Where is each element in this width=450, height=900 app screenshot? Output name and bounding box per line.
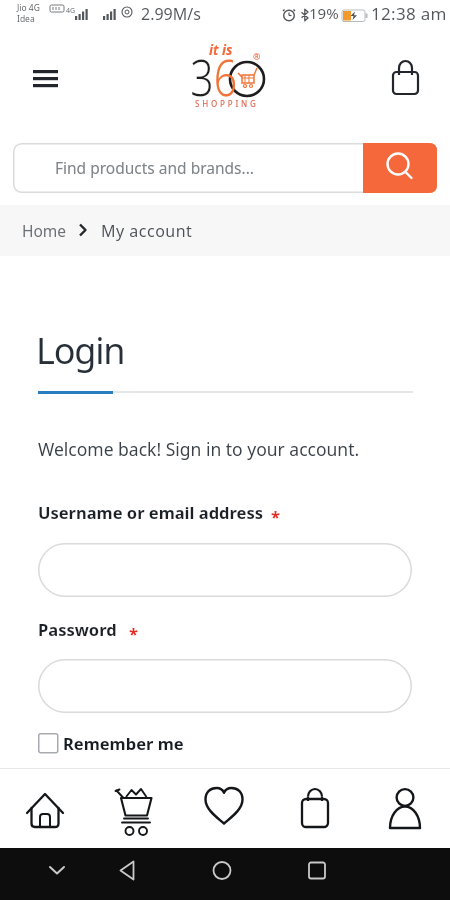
staticText: 19% — [309, 3, 339, 23]
staticText: ® — [253, 50, 261, 62]
staticText: * — [271, 505, 280, 527]
staticText: 2.99M/s — [141, 3, 201, 25]
staticText: Username or email address — [38, 501, 263, 523]
staticText: Welcome back! Sign in to your account. — [38, 437, 360, 461]
staticText: Login — [36, 326, 125, 375]
staticText: Idea — [17, 13, 35, 25]
staticText: 4G — [66, 6, 76, 16]
staticText: My account — [101, 220, 193, 242]
staticText: 12:38 am — [371, 2, 447, 25]
staticText: Home — [22, 220, 67, 241]
staticText: it is — [209, 41, 233, 59]
staticText: SHOPPING — [195, 98, 259, 109]
staticText: Jio 4G — [17, 2, 40, 14]
staticText: 36 — [190, 43, 238, 111]
staticText: Remember me — [63, 732, 184, 754]
staticText: Find products and brands... — [55, 157, 254, 178]
staticText: Password — [38, 618, 117, 640]
staticText: * — [129, 622, 138, 644]
